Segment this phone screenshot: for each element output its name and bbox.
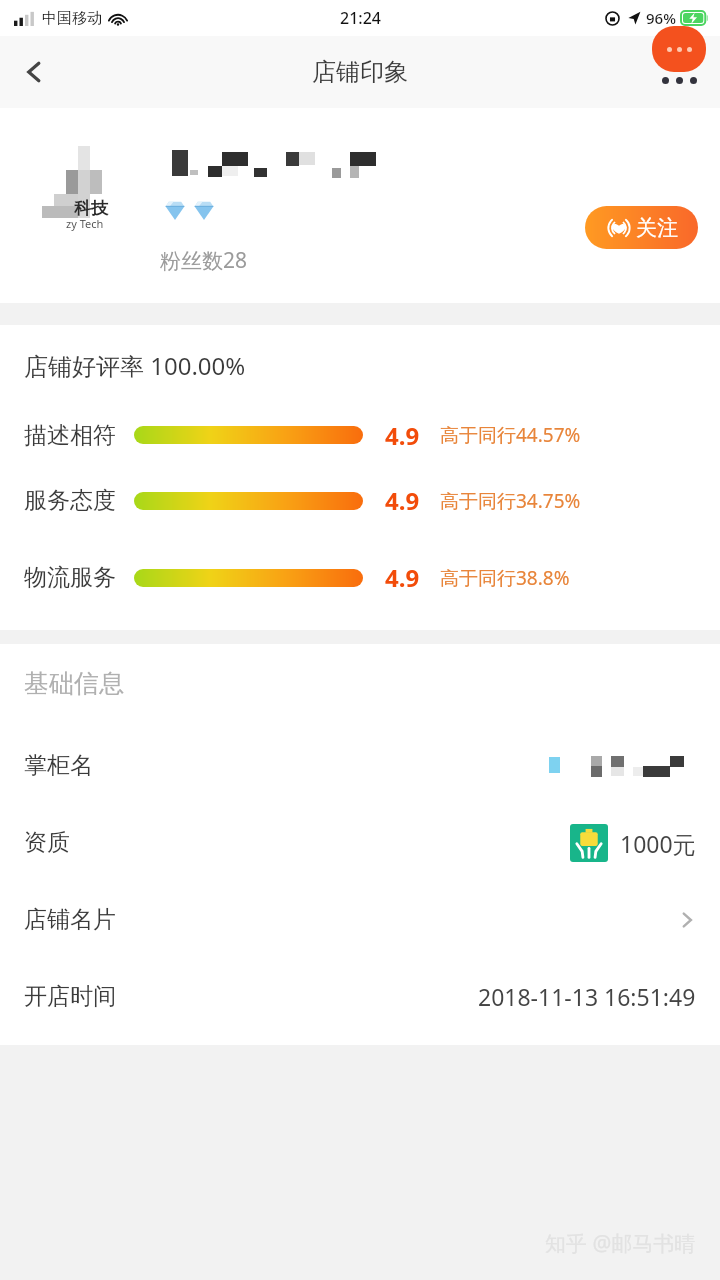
staticText: 知乎 @邮马书晴 bbox=[545, 1229, 696, 1258]
staticText: 21:24 bbox=[340, 7, 381, 29]
staticText: 服务态度 bbox=[24, 486, 116, 515]
button[interactable]: 店铺名片 bbox=[0, 881, 720, 958]
staticText: 科技 bbox=[74, 198, 108, 219]
staticText: 1000元 bbox=[620, 828, 696, 859]
staticText: 关注 bbox=[636, 215, 678, 241]
staticText: 基础信息 bbox=[24, 668, 124, 699]
staticText: 高于同行38.8% bbox=[440, 565, 570, 591]
staticText: 物流服务 bbox=[24, 563, 116, 592]
button[interactable]: Back bbox=[6, 44, 62, 100]
staticText: 4.9 bbox=[385, 561, 420, 594]
staticText: 粉丝数28 bbox=[160, 246, 248, 275]
staticText: 高于同行44.57% bbox=[440, 422, 581, 448]
button[interactable]: 服务态度 bbox=[0, 462, 720, 539]
button[interactable]: 物流服务 bbox=[0, 539, 720, 616]
staticText: 店铺好评率 100.00% bbox=[24, 349, 246, 382]
staticText: zy Tech bbox=[66, 216, 104, 231]
button[interactable]: More options bbox=[652, 26, 706, 84]
staticText: 高于同行34.75% bbox=[440, 488, 581, 514]
staticText: 开店时间 bbox=[24, 982, 116, 1011]
staticText: 店铺印象 bbox=[312, 57, 408, 87]
staticText: 4.9 bbox=[385, 419, 420, 452]
staticText: 店铺名片 bbox=[24, 905, 116, 934]
button[interactable]: 资质 bbox=[0, 804, 720, 881]
button[interactable]: 描述相符 bbox=[0, 408, 720, 462]
button[interactable]: 掌柜名 bbox=[0, 727, 720, 804]
staticText: 资质 bbox=[24, 828, 70, 857]
staticText: 2018-11-13 16:51:49 bbox=[478, 981, 696, 1012]
button[interactable]: 关注 bbox=[585, 206, 698, 249]
staticText: 中国移动 bbox=[42, 9, 102, 28]
staticText: 4.9 bbox=[385, 484, 420, 517]
staticText: 描述相符 bbox=[24, 421, 116, 450]
staticText: 掌柜名 bbox=[24, 751, 93, 780]
button[interactable]: 开店时间 bbox=[0, 958, 720, 1035]
staticText: 96% bbox=[646, 8, 676, 28]
